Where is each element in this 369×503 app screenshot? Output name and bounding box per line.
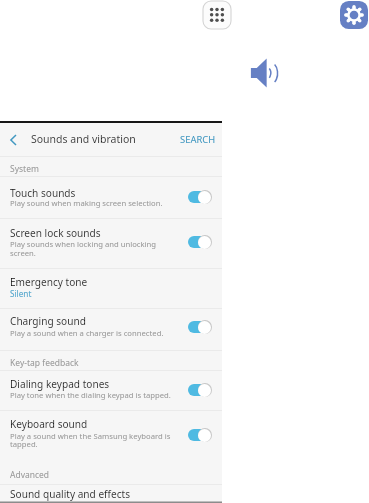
staticText: Sound quality and effects [10,487,131,501]
staticText: Dialing keypad tones [10,377,110,391]
staticText: Silent [10,288,32,299]
button[interactable]: Dialing keypad tones [0,371,222,410]
button[interactable]: On [187,235,211,249]
staticText: Touch sounds [10,186,76,200]
staticText: Play sounds when locking and unlocking [10,239,157,249]
button[interactable]: System [0,157,222,177]
staticText: System [10,163,39,175]
staticText: Charging sound [10,314,86,328]
button[interactable]: Volume [250,58,280,88]
button[interactable]: Charging sound [0,309,222,351]
button[interactable]: Advanced [0,462,222,484]
staticText: Play tone when the dialing keypad is tap… [10,390,171,400]
staticText: screen. [10,248,36,258]
button[interactable]: On [187,190,211,204]
button[interactable]: Screen lock sounds [0,219,222,268]
staticText: Sounds and vibration [31,132,136,146]
button[interactable]: Settings [340,1,368,29]
button[interactable]: On [187,428,211,442]
button[interactable]: Key-tap feedback [0,351,222,370]
staticText: Emergency tone [10,275,88,289]
staticText: SEARCH [180,133,216,146]
staticText: Key-tap feedback [10,357,79,369]
staticText: Play a sound when a charger is connected… [10,328,164,338]
button[interactable]: On [187,320,211,334]
button[interactable]: Sounds and vibration [26,123,174,155]
staticText: Play sound when making screen selection. [10,198,163,208]
button[interactable]: Keyboard sound [0,411,222,463]
button[interactable]: Apps [203,1,231,29]
button[interactable]: Emergency tone [0,269,222,308]
staticText: Screen lock sounds [10,226,101,240]
staticText: Keyboard sound [10,417,88,431]
button[interactable]: On [187,383,211,397]
button[interactable]: Navigate up [0,123,26,156]
staticText: tapped. [10,439,38,449]
button[interactable]: SEARCH [174,124,220,154]
staticText: Advanced [10,469,50,481]
staticText: Play a sound when the Samsung keyboard i… [10,431,171,441]
button[interactable]: Touch sounds [0,177,222,218]
button[interactable]: Sound quality and effects [0,485,222,502]
